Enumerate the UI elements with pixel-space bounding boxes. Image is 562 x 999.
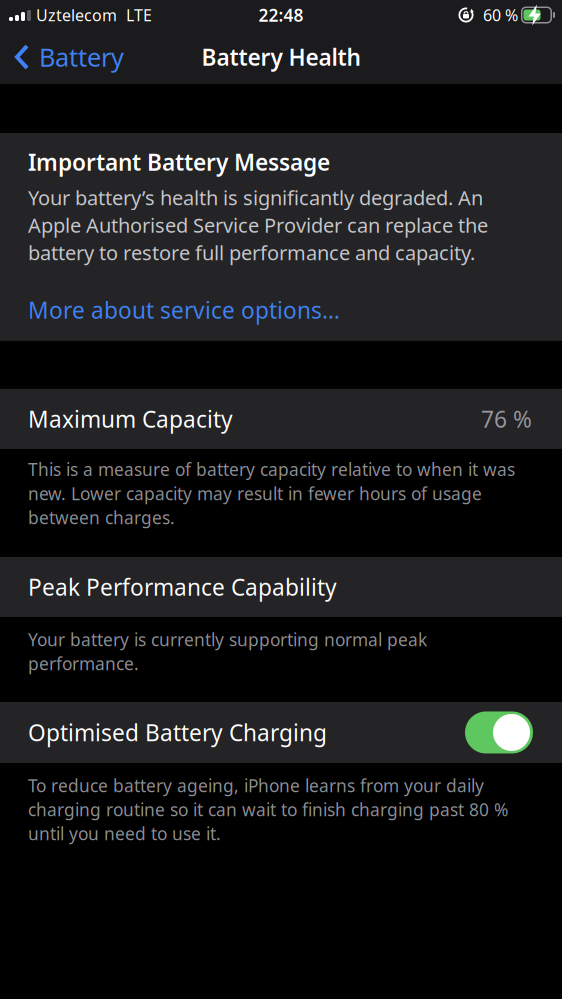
button[interactable]: Battery	[0, 40, 124, 74]
staticText: Your battery’s health is significantly d…	[28, 184, 483, 211]
staticText: LTE	[126, 4, 152, 26]
staticText: Battery	[39, 40, 124, 74]
staticText: 76 %	[481, 404, 532, 434]
staticText: 22:48	[258, 3, 303, 26]
staticText: new. Lower capacity may result in fewer …	[28, 482, 482, 505]
staticText: performance.	[28, 652, 139, 675]
staticText: between charges.	[28, 506, 175, 529]
staticText: Your battery is currently supporting nor…	[28, 628, 427, 651]
button[interactable]: Optimised Battery Charging	[465, 711, 533, 753]
staticText: To reduce battery ageing, iPhone learns …	[28, 774, 484, 797]
staticText: Maximum Capacity	[28, 404, 233, 434]
staticText: until you need to use it.	[28, 822, 221, 845]
staticText: Battery Health	[201, 42, 360, 72]
staticText: charging routine so it can wait to finis…	[28, 798, 508, 821]
staticText: Apple Authorised Service Provider can re…	[28, 212, 488, 238]
staticText: 60 %	[483, 4, 518, 26]
staticText: Optimised Battery Charging	[28, 717, 327, 747]
staticText: This is a measure of battery capacity re…	[28, 458, 515, 481]
staticText: Peak Performance Capability	[28, 572, 337, 602]
button[interactable]: More about service options…	[28, 295, 340, 325]
staticText: battery to restore full performance and …	[28, 239, 475, 266]
staticText: Important Battery Message	[28, 147, 330, 177]
staticText: Uztelecom	[36, 4, 117, 26]
staticText: More about service options…	[28, 295, 340, 325]
